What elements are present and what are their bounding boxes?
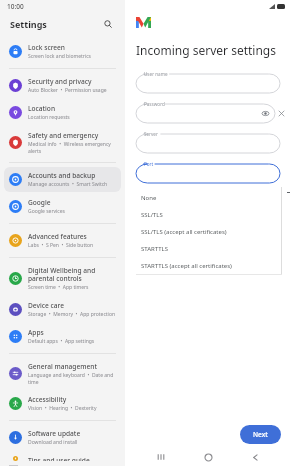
staticText: Download and install [28, 439, 78, 446]
button[interactable]: Tips and user guide [4, 452, 121, 465]
button[interactable]: Server [136, 130, 280, 153]
button[interactable]: Advanced features [4, 228, 121, 253]
button[interactable]: None [136, 189, 281, 206]
staticText: Advanced features [28, 232, 87, 241]
staticText: Auto Blocker • Permission usage [28, 87, 107, 94]
button[interactable]: Home [197, 448, 219, 466]
button[interactable]: Digital Wellbeing and parental controls [4, 262, 121, 295]
button[interactable]: Security and privacy [4, 73, 121, 98]
staticText: Apps [28, 328, 44, 337]
staticText: Digital Wellbeing and parental controls [28, 266, 116, 283]
staticText: Lock screen [28, 43, 65, 52]
button[interactable]: SSL/TLS [136, 206, 281, 223]
button[interactable]: SSL/TLS (accept all certificates) [136, 223, 281, 240]
button[interactable]: General management [4, 358, 121, 389]
staticText: Location requests [28, 114, 70, 121]
staticText: Security and privacy [28, 77, 92, 86]
staticText: Accounts and backup [28, 171, 96, 180]
staticText: Screen lock and biometrics [28, 53, 91, 60]
button[interactable]: Port [136, 160, 280, 183]
staticText: Google services [28, 208, 65, 215]
button[interactable]: Show password [261, 109, 270, 118]
button[interactable]: Location [4, 100, 121, 125]
staticText: STARTTLS (accept all certificates) [141, 262, 232, 270]
staticText: Incoming server settings [136, 42, 276, 58]
staticText: Vision • Hearing • Dexterity [28, 405, 97, 412]
staticText: Settings [10, 18, 47, 30]
button[interactable]: Safety and emergency [4, 127, 121, 158]
staticText: General management [28, 362, 97, 371]
button[interactable]: Google [4, 194, 121, 219]
staticText: Default apps • App settings [28, 338, 95, 345]
staticText: Screen time • App timers [28, 284, 89, 291]
button[interactable]: Next [240, 425, 281, 444]
button[interactable]: Search [101, 17, 115, 31]
staticText: Location [28, 104, 56, 113]
staticText: Language and keyboard • Date and time [28, 372, 116, 385]
staticText: Manage accounts • Smart Switch [28, 181, 108, 188]
button[interactable]: Software update [4, 425, 121, 450]
staticText: Medical info • Wireless emergency alerts [28, 141, 116, 154]
staticText: Device care [28, 301, 64, 310]
staticText: Labs • S Pen • Side button [28, 242, 94, 249]
button[interactable]: Back [244, 448, 266, 466]
button[interactable]: STARTTLS [136, 240, 281, 257]
staticText: STARTTLS [141, 245, 169, 253]
staticText: Software update [28, 429, 81, 438]
staticText: SSL/TLS [141, 211, 163, 219]
button[interactable]: Password [136, 100, 275, 123]
staticText: Storage • Memory • App protection [28, 311, 116, 318]
staticText: SSL/TLS (accept all certificates) [141, 228, 227, 236]
button[interactable]: Accounts and backup [4, 167, 121, 192]
staticText: None [141, 194, 157, 202]
button[interactable]: Recent apps [150, 448, 172, 466]
staticText: Accessibility [28, 395, 67, 404]
staticText: Google [28, 198, 51, 207]
staticText: Server [144, 131, 158, 137]
staticText: Password [144, 101, 165, 107]
button[interactable]: Apps [4, 324, 121, 349]
button[interactable]: Accessibility [4, 391, 121, 416]
staticText: Next [253, 430, 268, 439]
staticText: 10:00 [7, 2, 24, 11]
staticText: User name [144, 71, 168, 77]
button[interactable]: STARTTLS (accept all certificates) [136, 257, 281, 274]
button[interactable]: User name [136, 70, 280, 93]
button[interactable]: Device care [4, 297, 121, 322]
staticText: Tips and user guide [28, 456, 90, 461]
staticText: Safety and emergency [28, 131, 99, 140]
button[interactable]: Clear [275, 100, 287, 123]
staticText: Port [144, 161, 154, 167]
button[interactable]: Lock screen [4, 39, 121, 64]
